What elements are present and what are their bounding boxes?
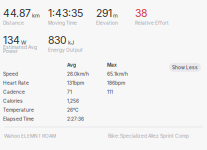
- staticText: Distance: [3, 20, 24, 26]
- staticText: Temperature: [3, 107, 34, 113]
- staticText: Elapsed Time: [3, 116, 34, 122]
- button[interactable]: Show Less: [169, 63, 201, 72]
- staticText: Max: [107, 62, 117, 68]
- staticText: Cadence: [3, 89, 25, 95]
- staticText: 186bpm: [107, 80, 125, 86]
- staticText: 1,256: [67, 98, 79, 104]
- staticText: W: [21, 39, 26, 46]
- staticText: 830: [48, 34, 67, 47]
- staticText: Heart Rate: [3, 80, 29, 86]
- staticText: Elevation: [96, 20, 118, 26]
- staticText: Estimated Avg: [3, 44, 37, 50]
- staticText: 291: [96, 7, 112, 20]
- staticText: 111: [107, 89, 113, 95]
- staticText: Speed: [3, 71, 18, 77]
- staticText: 65.1km/h: [107, 71, 128, 77]
- staticText: 26.0km/h: [67, 71, 89, 77]
- staticText: 2:27:36: [67, 116, 84, 122]
- staticText: km: [32, 12, 40, 19]
- staticText: kJ: [68, 39, 74, 46]
- staticText: m: [113, 12, 118, 19]
- staticText: Show Less: [172, 64, 198, 70]
- staticText: 38: [135, 7, 147, 20]
- staticText: Energy Output: [48, 47, 83, 53]
- staticText: Moving Time: [48, 20, 77, 26]
- staticText: Avg: [67, 62, 76, 68]
- staticText: Bike: Specialized Allez Sprint Comp: [108, 133, 189, 139]
- staticText: Calories: [3, 98, 23, 104]
- staticText: Relative Effort: [135, 20, 169, 26]
- staticText: 1:43:35: [48, 7, 83, 20]
- staticText: Wahoo ELEMNT ROAM: [4, 133, 56, 139]
- staticText: 26°C: [67, 107, 79, 113]
- staticText: 71: [67, 89, 72, 95]
- staticText: 131bpm: [67, 80, 84, 86]
- staticText: 44.87: [3, 7, 31, 20]
- staticText: 134: [3, 34, 20, 47]
- staticText: Power: [3, 48, 18, 54]
